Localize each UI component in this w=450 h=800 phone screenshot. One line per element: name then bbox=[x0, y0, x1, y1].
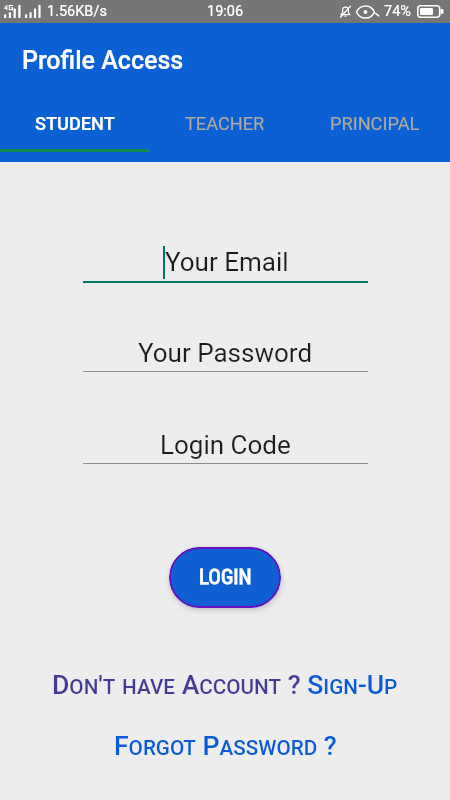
staticText: Your Password bbox=[138, 338, 313, 368]
other: Mobile signal 4G bbox=[4, 5, 21, 18]
button[interactable]: DON'T HAVE ACCOUNT ? SIGN-UP bbox=[0, 664, 450, 704]
staticText: DON'T HAVE ACCOUNT ? SIGN-UP bbox=[52, 669, 398, 700]
staticText: STUDENT bbox=[35, 113, 115, 134]
staticText: LOGIN bbox=[199, 565, 252, 590]
staticText: 19:06 bbox=[207, 3, 244, 20]
button[interactable]: FORGOT PASSWORD ? bbox=[0, 725, 450, 765]
staticText: 1.56KB/s bbox=[47, 3, 107, 20]
button[interactable]: PRINCIPAL bbox=[300, 101, 450, 145]
button[interactable]: LOGIN bbox=[169, 547, 281, 608]
staticText: FORGOT PASSWORD ? bbox=[114, 730, 337, 761]
staticText: Your Email bbox=[165, 247, 289, 277]
button[interactable]: Login Code bbox=[83, 418, 368, 464]
other: Silent mode bbox=[340, 5, 351, 18]
other: Battery 74 percent bbox=[417, 5, 444, 18]
other: Mobile signal bbox=[25, 5, 41, 18]
button[interactable]: TEACHER bbox=[150, 101, 300, 145]
staticText: PRINCIPAL bbox=[330, 113, 420, 134]
button[interactable]: Your Email bbox=[83, 237, 368, 283]
other: Eye protection mode bbox=[356, 6, 379, 18]
button[interactable]: Your Password bbox=[83, 326, 368, 372]
staticText: TEACHER bbox=[185, 113, 265, 134]
button[interactable]: STUDENT bbox=[0, 101, 150, 145]
staticText: Login Code bbox=[160, 430, 291, 460]
staticText: Profile Access bbox=[22, 46, 184, 75]
staticText: 74% bbox=[384, 3, 411, 20]
